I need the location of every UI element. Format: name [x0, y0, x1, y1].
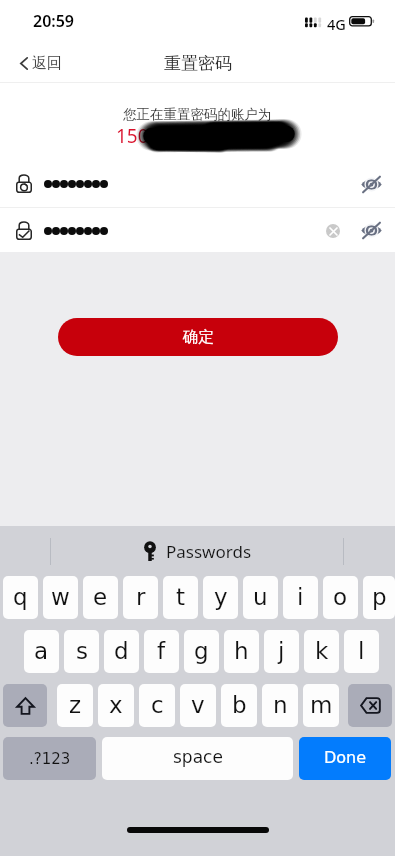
button[interactable]: Show password	[357, 216, 385, 244]
staticText: t	[176, 584, 186, 611]
staticText: Passwords	[166, 540, 252, 563]
staticText: 重置密码	[164, 53, 232, 74]
staticText: q	[13, 584, 28, 611]
staticText: d	[114, 638, 129, 665]
button[interactable]: g	[184, 630, 219, 673]
staticText: r	[136, 584, 146, 611]
staticText: 4G	[327, 14, 346, 34]
button[interactable]: r	[123, 576, 158, 619]
button[interactable]: Done	[299, 737, 391, 780]
staticText: s	[76, 638, 88, 665]
staticText: e	[93, 584, 108, 611]
staticText: 20:59	[33, 10, 75, 32]
button[interactable]: p	[363, 576, 395, 619]
staticText: z	[69, 692, 82, 719]
staticText: f	[157, 638, 166, 665]
button[interactable]: u	[243, 576, 278, 619]
button[interactable]: k	[304, 630, 339, 673]
button[interactable]: Shift	[3, 684, 47, 727]
button[interactable]: c	[139, 684, 175, 727]
button[interactable]: i	[283, 576, 318, 619]
button[interactable]: h	[224, 630, 259, 673]
button[interactable]: j	[264, 630, 299, 673]
staticText: .?123	[29, 750, 71, 767]
button[interactable]: a	[24, 630, 59, 673]
button[interactable]: f	[144, 630, 179, 673]
button[interactable]: v	[180, 684, 216, 727]
staticText: l	[358, 638, 365, 665]
staticText: j	[278, 638, 285, 665]
staticText: 您正在重置密码的账户为	[123, 106, 272, 123]
button[interactable]: Backspace	[348, 684, 392, 727]
button[interactable]: x	[98, 684, 134, 727]
staticText: Done	[324, 748, 367, 767]
staticText: y	[214, 584, 228, 611]
button[interactable]: Passwords	[144, 540, 252, 563]
staticText: w	[51, 584, 70, 611]
button[interactable]: y	[203, 576, 238, 619]
staticText: n	[273, 692, 288, 719]
staticText: space	[173, 747, 223, 767]
button[interactable]: l	[344, 630, 379, 673]
button[interactable]: e	[83, 576, 118, 619]
staticText: 150	[116, 123, 149, 149]
staticText: p	[372, 584, 387, 611]
staticText: 确定	[183, 327, 214, 347]
staticText: x	[109, 692, 123, 719]
button[interactable]: z	[57, 684, 93, 727]
staticText: b	[232, 692, 247, 719]
button[interactable]: 返回	[0, 46, 78, 81]
staticText: v	[191, 692, 205, 719]
staticText: m	[310, 692, 333, 719]
staticText: 返回	[32, 54, 62, 73]
staticText: u	[253, 584, 268, 611]
button[interactable]: space	[102, 737, 293, 780]
button[interactable]: o	[323, 576, 358, 619]
button[interactable]: Clear text	[323, 221, 342, 240]
button[interactable]: .?123	[3, 737, 96, 780]
staticText: a	[34, 638, 49, 665]
button[interactable]: 确定	[58, 318, 338, 356]
staticText: k	[315, 638, 329, 665]
button[interactable]: q	[3, 576, 38, 619]
staticText: o	[333, 584, 348, 611]
staticText: g	[194, 638, 209, 665]
button[interactable]: d	[104, 630, 139, 673]
button[interactable]: s	[64, 630, 99, 673]
button[interactable]: Show password	[357, 170, 385, 198]
staticText: h	[234, 638, 249, 665]
button[interactable]: t	[163, 576, 198, 619]
staticText: c	[151, 692, 164, 719]
button[interactable]: n	[262, 684, 298, 727]
button[interactable]: w	[43, 576, 78, 619]
button[interactable]: b	[221, 684, 257, 727]
staticText: i	[297, 584, 304, 611]
button[interactable]: m	[303, 684, 339, 727]
